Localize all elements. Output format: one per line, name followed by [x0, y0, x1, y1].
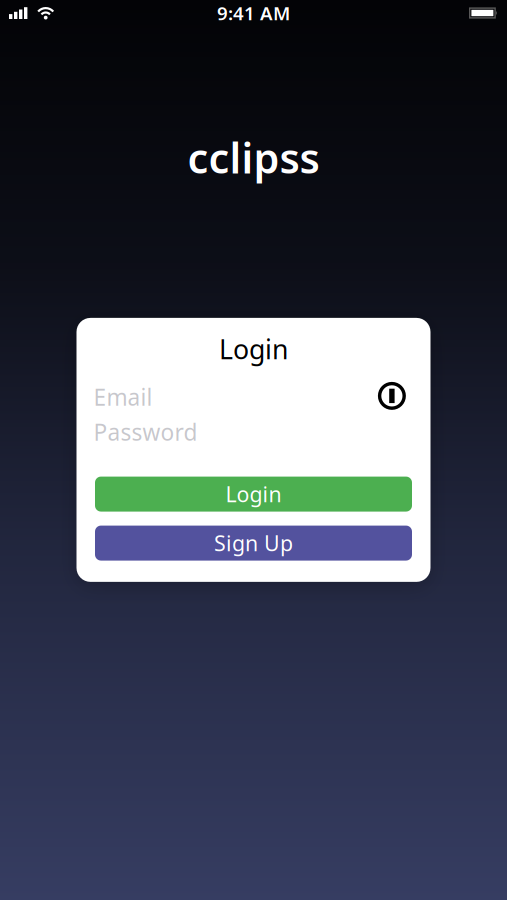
staticText: Sign Up [214, 529, 293, 557]
staticText: Login [219, 331, 288, 367]
button[interactable]: Email [93, 380, 369, 414]
button[interactable]: Password [93, 415, 413, 449]
staticText: cclipss [187, 130, 319, 185]
button[interactable]: 1Password [378, 382, 406, 410]
button[interactable]: Sign Up [95, 526, 412, 561]
staticText: Password [93, 417, 197, 447]
staticText: Email [93, 382, 152, 412]
button[interactable]: Login [95, 477, 412, 512]
staticText: Login [225, 480, 281, 508]
staticText: 9:41 AM [217, 1, 290, 25]
